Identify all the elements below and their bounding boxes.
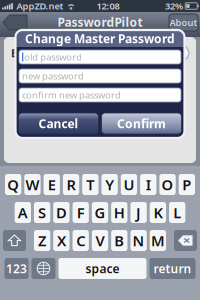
button[interactable]: I — [140, 174, 156, 195]
staticText: G — [94, 203, 105, 222]
staticText: Y — [105, 175, 114, 194]
staticText: Confirm — [117, 115, 166, 131]
staticText: new password — [22, 70, 84, 82]
button[interactable]: Q — [5, 174, 21, 195]
staticText: old password — [24, 51, 82, 63]
staticText: W — [25, 175, 39, 194]
button[interactable]: W — [24, 174, 41, 195]
button[interactable]: 123 — [4, 258, 28, 279]
button[interactable]: G — [92, 202, 108, 223]
button[interactable]: C — [72, 230, 89, 251]
button[interactable]: U — [121, 174, 137, 195]
staticText: M — [151, 231, 165, 250]
button[interactable]: Cancel — [18, 113, 98, 134]
staticText: Z — [38, 231, 46, 250]
button[interactable]: F — [72, 202, 89, 223]
staticText: return — [153, 260, 191, 276]
staticText: space — [85, 260, 119, 276]
staticText: About — [169, 16, 197, 29]
staticText: O — [161, 175, 173, 194]
staticText: Change Master Password — [25, 30, 175, 46]
staticText: K — [153, 203, 162, 222]
staticText: I — [146, 175, 151, 194]
button[interactable]: Confirm — [101, 113, 181, 134]
button[interactable]: return — [149, 258, 195, 279]
staticText: N — [133, 231, 145, 250]
staticText: PasswordPilot — [57, 14, 142, 30]
staticText: A — [18, 203, 28, 222]
button[interactable]: Shift — [3, 230, 26, 251]
staticText: 12:08 — [96, 0, 119, 12]
button[interactable]: Z — [34, 230, 50, 251]
staticText: 32% — [165, 0, 183, 12]
button[interactable]: space — [58, 258, 146, 279]
staticText: B — [114, 231, 124, 250]
button[interactable]: H — [111, 202, 127, 223]
staticText: R — [66, 175, 75, 194]
button[interactable]: S — [34, 202, 50, 223]
button[interactable]: R — [63, 174, 79, 195]
staticText: Enabled — [11, 46, 53, 60]
staticText: Q — [7, 175, 19, 194]
button[interactable]: K — [150, 202, 166, 223]
staticText: L — [173, 203, 181, 222]
staticText: X — [57, 231, 66, 250]
button[interactable]: About — [169, 14, 198, 31]
staticText: confirm new password — [22, 89, 121, 101]
staticText: C — [76, 231, 85, 250]
staticText: V — [95, 231, 104, 250]
button[interactable]: Next keyboard — [31, 258, 55, 279]
staticText: S — [38, 203, 46, 222]
staticText: F — [77, 203, 85, 222]
button[interactable]: O — [159, 174, 176, 195]
staticText: H — [114, 203, 125, 222]
staticText: D — [56, 203, 67, 222]
button[interactable]: D — [53, 202, 69, 223]
staticText: 123 — [6, 260, 27, 276]
button[interactable]: M — [150, 230, 166, 251]
button[interactable]: A — [15, 202, 31, 223]
button[interactable]: J — [130, 202, 147, 223]
button[interactable]: N — [130, 230, 147, 251]
button[interactable]: T — [82, 174, 98, 195]
staticText: E — [48, 175, 56, 194]
button[interactable]: Y — [101, 174, 118, 195]
button[interactable]: V — [92, 230, 108, 251]
button[interactable]: Delete — [174, 230, 197, 251]
button[interactable]: B — [111, 230, 127, 251]
staticText: U — [123, 175, 134, 194]
staticText: J — [136, 203, 141, 222]
button[interactable]: Back — [2, 14, 28, 31]
button[interactable]: P — [179, 174, 195, 195]
staticText: T — [86, 175, 94, 194]
button[interactable]: X — [53, 230, 69, 251]
staticText: AppZD.net — [16, 0, 63, 12]
button[interactable]: L — [169, 202, 185, 223]
staticText: P — [182, 175, 191, 194]
staticText: Cancel — [38, 115, 78, 131]
button[interactable]: E — [44, 174, 60, 195]
